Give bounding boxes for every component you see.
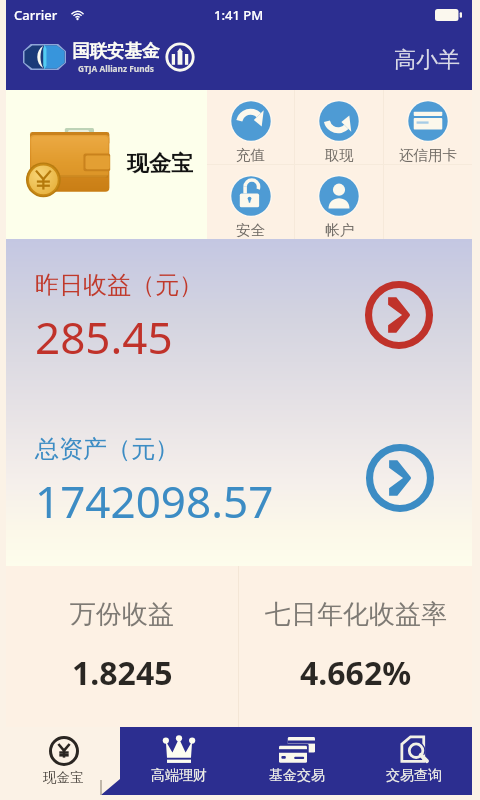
staticText: 高端理财 bbox=[151, 767, 207, 785]
button[interactable]: 现金宝 bbox=[6, 727, 120, 795]
other: Yesterday profit details bbox=[365, 281, 433, 349]
staticText: 交易查询 bbox=[386, 767, 442, 785]
staticText: 1:41 PM bbox=[214, 6, 264, 24]
button[interactable]: Account bbox=[295, 165, 383, 239]
button[interactable]: Withdraw bbox=[295, 90, 383, 164]
staticText: 充值 bbox=[236, 146, 265, 164]
staticText: 285.45 bbox=[35, 307, 173, 367]
button[interactable]: 七日年化收益率 bbox=[239, 566, 472, 727]
staticText: 帐户 bbox=[325, 221, 354, 239]
button[interactable]: 现金宝 bbox=[6, 90, 207, 239]
staticText: 基金交易 bbox=[269, 767, 325, 785]
staticText: 1742098.57 bbox=[35, 471, 274, 531]
staticText: 安全 bbox=[236, 221, 265, 239]
button[interactable]: 交易查询 bbox=[355, 727, 472, 795]
button[interactable]: Security bbox=[207, 165, 294, 239]
staticText: 高小羊 bbox=[394, 46, 460, 74]
other: Total assets details bbox=[366, 444, 434, 512]
staticText: 七日年化收益率 bbox=[265, 598, 447, 631]
button[interactable]: Top up bbox=[207, 90, 294, 164]
staticText: 昨日收益（元） bbox=[35, 270, 203, 300]
staticText: 还信用卡 bbox=[399, 146, 457, 164]
button[interactable]: 高端理财 bbox=[120, 727, 238, 795]
button[interactable]: 昨日收益（元） bbox=[6, 239, 472, 402]
staticText: GTJA Allianz Funds bbox=[78, 63, 154, 74]
staticText: 1.8245 bbox=[72, 651, 173, 695]
staticText: 取现 bbox=[325, 146, 354, 164]
staticText: 总资产（元） bbox=[35, 434, 179, 464]
staticText: 4.662% bbox=[300, 651, 412, 695]
staticText: 万份收益 bbox=[70, 598, 174, 631]
staticText: 现金宝 bbox=[127, 150, 193, 178]
button[interactable]: 万份收益 bbox=[6, 566, 238, 727]
button[interactable]: Repay credit card bbox=[384, 90, 472, 164]
staticText: Carrier bbox=[14, 6, 58, 24]
staticText: 现金宝 bbox=[43, 769, 84, 786]
button[interactable]: 基金交易 bbox=[238, 727, 355, 795]
staticText: 国联安基金 bbox=[72, 40, 160, 62]
button[interactable]: 总资产（元） bbox=[6, 402, 472, 566]
